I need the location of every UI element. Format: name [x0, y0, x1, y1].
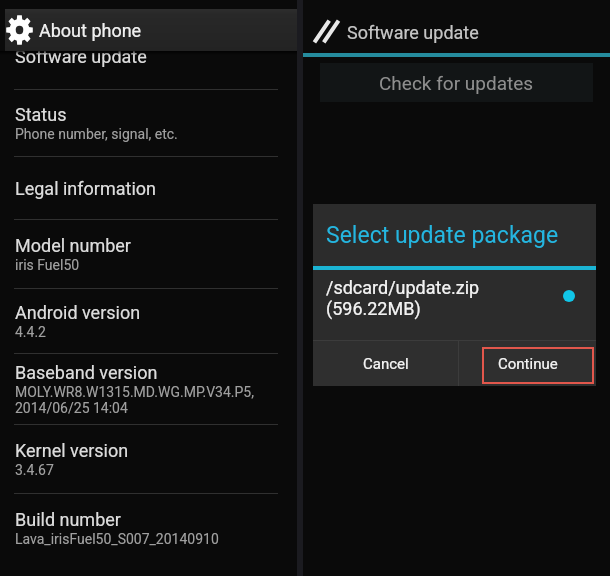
staticText: MOLY.WR8.W1315.MD.WG.MP.V34.P5, 2014/06/… — [15, 384, 254, 416]
staticText: About phone — [39, 20, 142, 41]
button[interactable]: Status — [0, 90, 297, 156]
other: Software update — [314, 18, 340, 45]
staticText: /sdcard/update.zip (596.22MB) — [326, 277, 480, 320]
staticText: Baseband version — [15, 362, 158, 383]
staticText: Build number — [15, 509, 121, 530]
staticText: 4.4.2 — [15, 324, 46, 340]
staticText: Model number — [15, 235, 131, 256]
other: Settings — [6, 15, 33, 45]
button[interactable]: Software update — [0, 23, 297, 89]
button[interactable]: Continue — [459, 341, 596, 386]
button[interactable]: Settings — [5, 9, 302, 51]
staticText: 3.4.67 — [15, 462, 54, 478]
button[interactable]: Legal information — [0, 157, 297, 219]
button[interactable]: Check for updates — [320, 63, 593, 102]
button[interactable]: Android version — [0, 289, 297, 353]
staticText: Software update — [347, 22, 479, 43]
staticText: Phone number, signal, etc. — [15, 126, 178, 142]
staticText: Legal information — [15, 178, 156, 199]
staticText: Check for updates — [379, 72, 534, 94]
staticText: Cancel — [363, 355, 409, 373]
staticText: Software update — [15, 46, 147, 67]
staticText: Android version — [15, 302, 141, 323]
staticText: Continue — [498, 355, 558, 373]
button[interactable]: Model number — [0, 220, 297, 288]
button[interactable]: Build number — [0, 494, 297, 562]
staticText: Kernel version — [15, 440, 129, 461]
staticText: Select update package — [326, 222, 559, 249]
button[interactable]: Baseband version — [0, 354, 297, 424]
staticText: Lava_irisFuel50_S007_20140910 — [15, 531, 219, 547]
button[interactable]: Kernel version — [0, 425, 297, 493]
staticText: Status — [15, 104, 67, 125]
button[interactable]: Cancel — [313, 341, 458, 386]
button[interactable]: Software update — [303, 0, 610, 53]
staticText: iris Fuel50 — [15, 257, 80, 273]
